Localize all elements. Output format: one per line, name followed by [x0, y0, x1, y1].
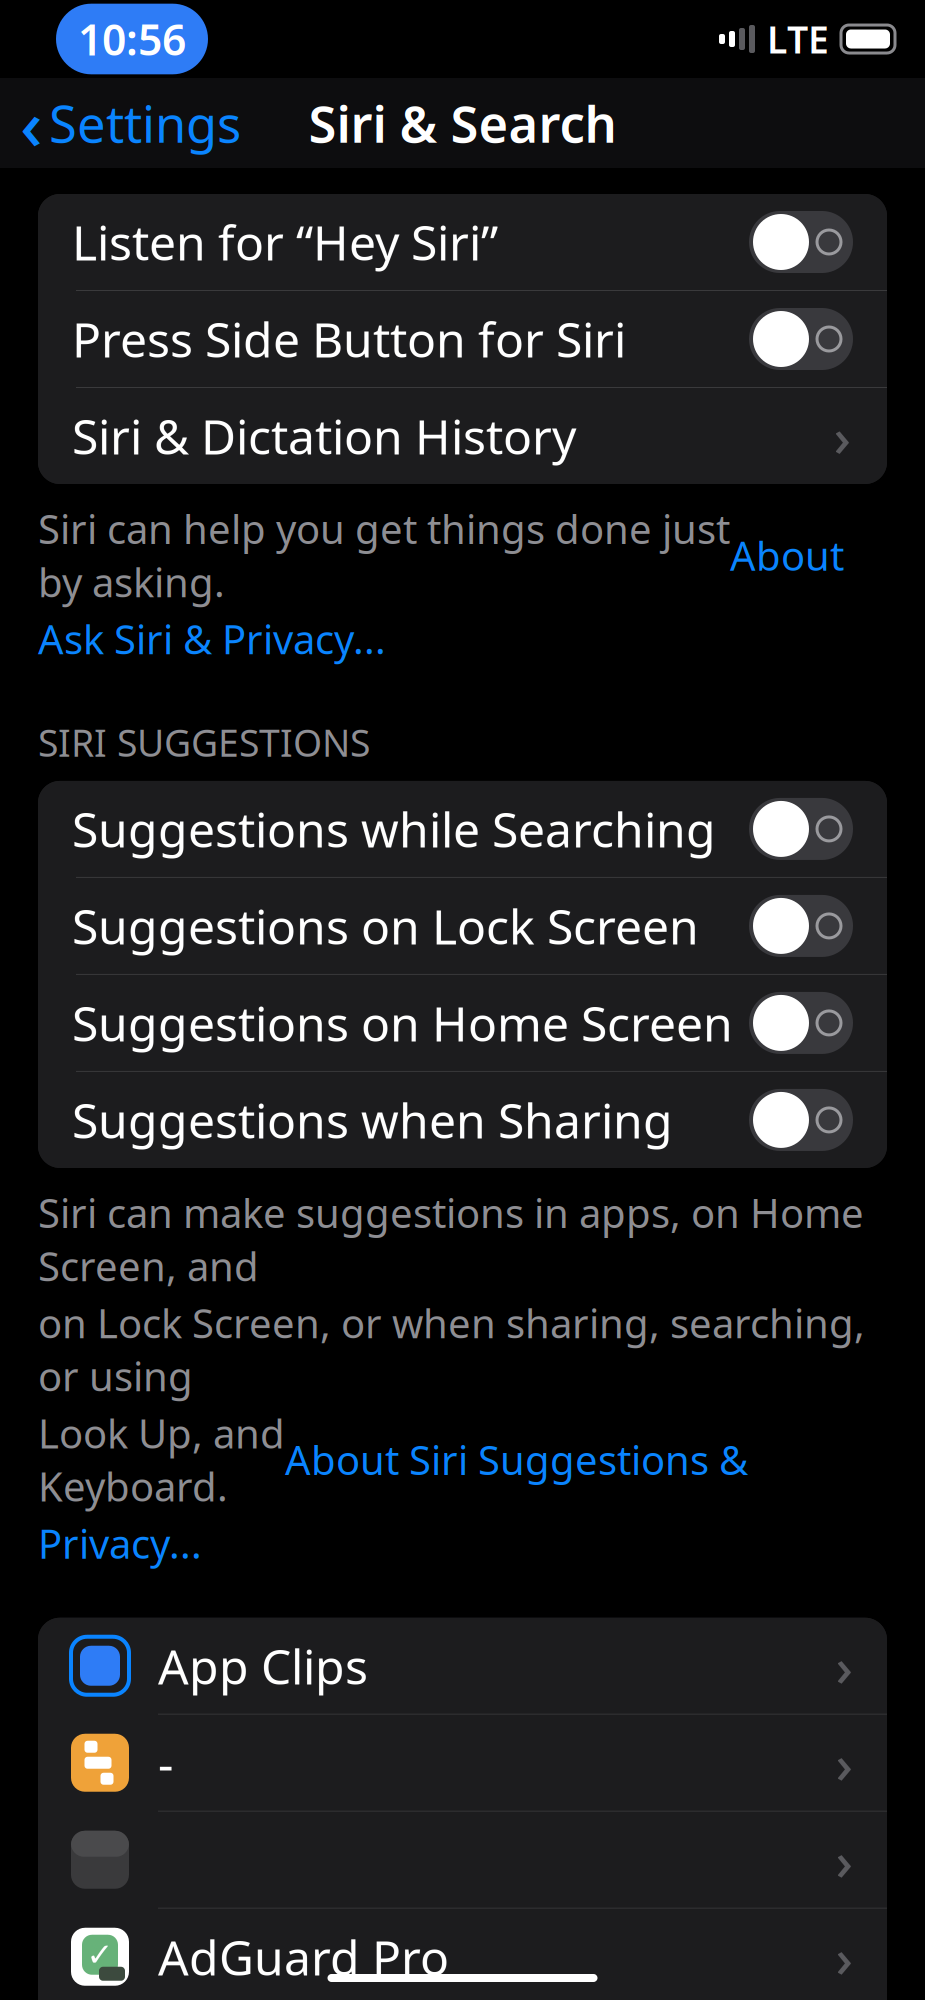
staticText: ›	[833, 401, 850, 471]
button[interactable]: Suggestions while Searching	[38, 781, 887, 877]
staticText: AdGuard Pro	[158, 1925, 449, 1989]
button[interactable]: Listen for “Hey Siri”	[38, 194, 887, 290]
staticText: Suggestions on Lock Screen	[72, 894, 699, 958]
staticText: ›	[835, 1921, 852, 1992]
button[interactable]: Siri & Dictation History	[38, 388, 887, 484]
button[interactable]: ‹	[0, 83, 261, 163]
staticText: ✓	[86, 1937, 113, 1973]
staticText: Settings	[49, 89, 241, 157]
staticText: -	[158, 1731, 173, 1795]
staticText: Siri & Search	[308, 89, 616, 157]
button[interactable]	[38, 1812, 887, 1908]
staticText: Siri & Dictation History	[72, 404, 576, 468]
staticText: SIRI SUGGESTIONS	[38, 717, 370, 767]
staticText: Suggestions on Home Screen	[72, 991, 733, 1055]
staticText: Siri can make suggestions in apps, on Ho…	[38, 1186, 864, 1292]
button[interactable]: -	[38, 1715, 887, 1811]
staticText: App Clips	[158, 1634, 368, 1698]
staticText: 10:56	[78, 11, 186, 67]
staticText: ›	[835, 1824, 852, 1895]
staticText: About	[730, 529, 844, 582]
staticText: Suggestions while Searching	[72, 797, 716, 861]
button[interactable]: ✓	[38, 1909, 887, 2000]
button[interactable]: Suggestions on Home Screen	[38, 975, 887, 1071]
button[interactable]: Suggestions on Lock Screen	[38, 878, 887, 974]
staticText: ‹	[20, 77, 43, 169]
staticText: on Lock Screen, or when sharing, searchi…	[38, 1296, 865, 1402]
staticText: Siri can help you get things done just b…	[38, 502, 730, 608]
staticText: Ask Siri & Privacy...	[38, 612, 386, 665]
button[interactable]: Suggestions when Sharing	[38, 1072, 887, 1168]
staticText: Listen for “Hey Siri”	[72, 210, 498, 274]
staticText: About Siri Suggestions &	[285, 1433, 748, 1486]
staticText: LTE	[767, 14, 829, 64]
button[interactable]: App Clips	[38, 1618, 887, 1714]
staticText: Press Side Button for Siri	[72, 307, 626, 371]
staticText: Suggestions when Sharing	[72, 1088, 673, 1152]
button[interactable]: Press Side Button for Siri	[38, 291, 887, 387]
staticText: ›	[835, 1630, 852, 1701]
staticText: ›	[835, 1727, 852, 1798]
staticText: Privacy...	[38, 1517, 202, 1570]
staticText: Look Up, and Keyboard.	[38, 1406, 285, 1513]
